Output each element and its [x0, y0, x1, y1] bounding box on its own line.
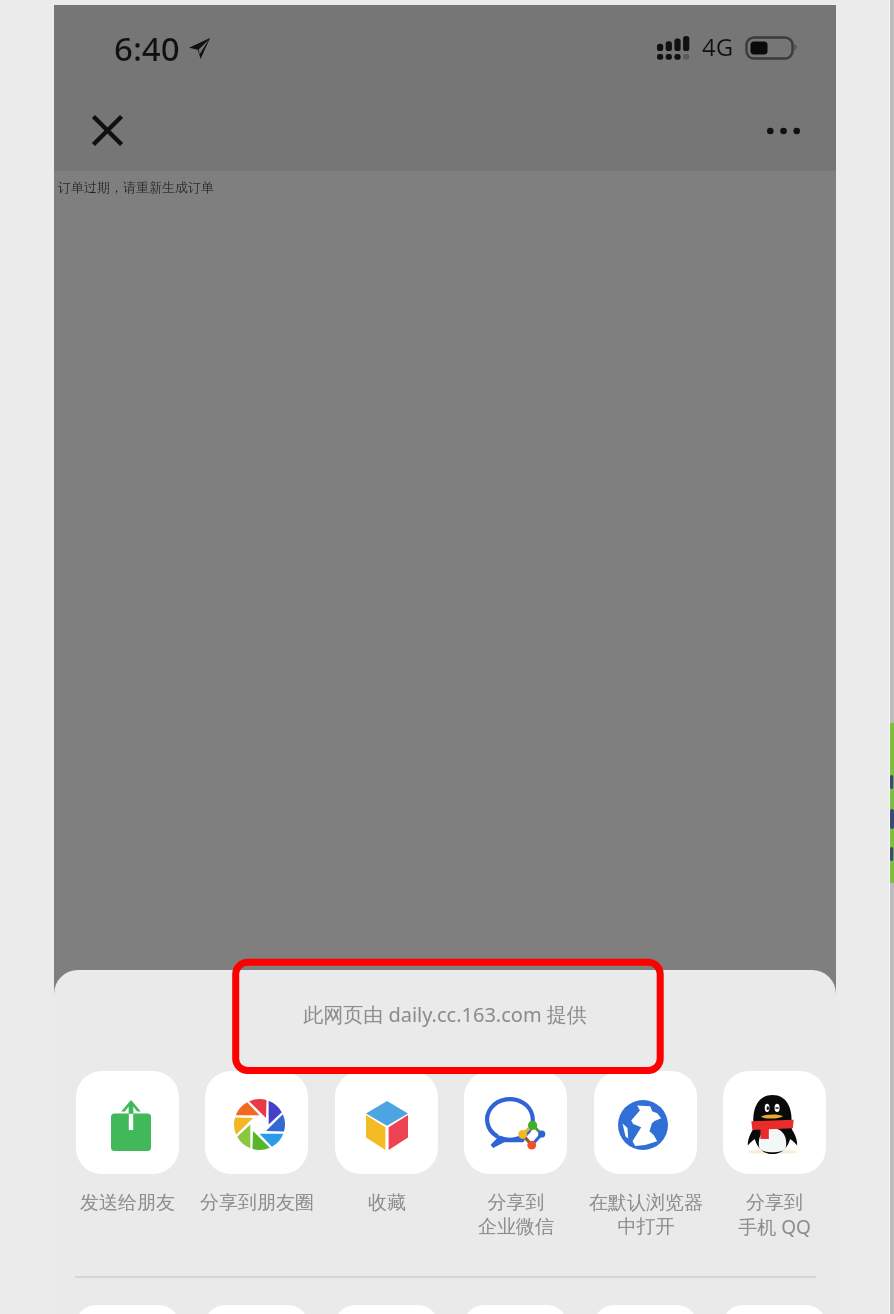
button[interactable]: More share options: [464, 1305, 567, 1314]
button[interactable]: 收藏: [335, 1071, 438, 1174]
staticText: 收藏: [368, 1191, 406, 1215]
staticText: 发送给朋友: [80, 1191, 175, 1215]
button[interactable]: More share options: [723, 1305, 826, 1314]
staticText: 在默认浏览器 中打开: [589, 1191, 703, 1239]
staticText: 6:40: [114, 26, 180, 71]
button[interactable]: 分享到手机 QQ: [723, 1071, 826, 1174]
button[interactable]: More share options: [594, 1305, 697, 1314]
button[interactable]: Close: [71, 94, 143, 166]
staticText: 分享到 手机 QQ: [738, 1191, 811, 1239]
staticText: 4G: [702, 30, 734, 63]
button[interactable]: More share options: [205, 1305, 308, 1314]
button[interactable]: 发送给朋友: [76, 1071, 179, 1174]
staticText: 订单过期，请重新生成订单: [58, 179, 214, 195]
button[interactable]: More share options: [335, 1305, 438, 1314]
button[interactable]: More options: [747, 95, 819, 167]
staticText: 此网页由 daily.cc.163.com 提供: [54, 1001, 836, 1028]
button[interactable]: 分享到朋友圈: [205, 1071, 308, 1174]
staticText: 分享到 企业微信: [478, 1191, 554, 1239]
button[interactable]: 分享到企业微信: [464, 1071, 567, 1174]
staticText: 分享到朋友圈: [200, 1191, 314, 1215]
button[interactable]: 在默认浏览器中打开: [594, 1071, 697, 1174]
button[interactable]: More share options: [76, 1305, 179, 1314]
